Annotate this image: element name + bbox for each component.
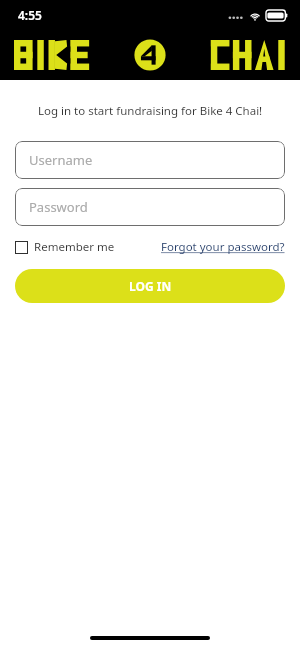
staticText: LOG IN: [129, 278, 172, 294]
staticText: Log in to start fundraising for Bike 4 C…: [38, 103, 263, 119]
staticText: 4:55: [18, 7, 42, 23]
other: Bike 4 Chai: [14, 40, 286, 70]
staticText: Password: [29, 198, 88, 216]
button[interactable]: Password: [15, 188, 285, 226]
staticText: Remember me: [34, 239, 115, 255]
staticText: Forgot your password?: [161, 239, 285, 255]
button[interactable]: Remember me: [15, 239, 115, 255]
button[interactable]: LOG IN: [15, 269, 285, 303]
button[interactable]: Username: [15, 141, 285, 179]
staticText: Username: [29, 151, 93, 169]
button[interactable]: Forgot your password?: [161, 239, 285, 255]
